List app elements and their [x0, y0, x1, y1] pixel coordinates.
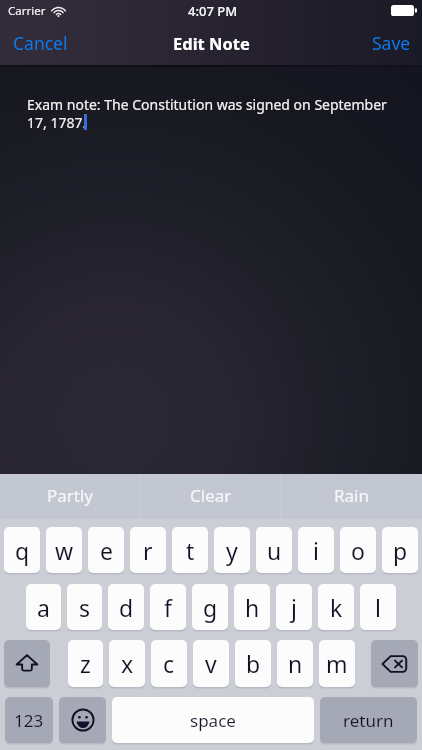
staticText: 123 — [14, 709, 44, 732]
button[interactable]: t — [172, 527, 208, 573]
button[interactable]: n — [277, 640, 313, 687]
button[interactable]: c — [151, 640, 187, 687]
button[interactable]: o — [340, 527, 376, 573]
staticText: x — [121, 648, 134, 679]
staticText: i — [313, 535, 319, 566]
button[interactable]: z — [68, 640, 103, 687]
staticText: Partly — [47, 484, 94, 507]
staticText: p — [393, 535, 408, 566]
button[interactable]: w — [46, 527, 82, 573]
staticText: f — [164, 592, 172, 623]
button[interactable]: Rain — [281, 474, 422, 519]
button[interactable]: l — [360, 584, 396, 630]
staticText: m — [326, 648, 348, 679]
staticText: Edit Note — [173, 32, 250, 54]
button[interactable]: y — [214, 527, 250, 573]
button[interactable]: q — [4, 527, 40, 573]
staticText: s — [79, 592, 91, 623]
button[interactable]: b — [235, 640, 271, 687]
button[interactable]: m — [319, 640, 355, 687]
button[interactable]: f — [150, 584, 186, 630]
button[interactable]: d — [108, 584, 144, 630]
staticText: n — [288, 648, 303, 679]
staticText: Rain — [334, 484, 370, 507]
button[interactable]: i — [298, 527, 334, 573]
staticText: Save — [372, 31, 411, 55]
staticText: h — [245, 592, 260, 623]
staticText: a — [37, 592, 50, 623]
button[interactable]: s — [67, 584, 102, 630]
staticText: Exam note: The Constitution was signed o… — [27, 95, 392, 132]
button[interactable]: j — [276, 584, 312, 630]
staticText: g — [203, 592, 218, 623]
staticText: v — [205, 648, 217, 679]
button[interactable]: p — [382, 527, 418, 573]
staticText: y — [226, 535, 238, 566]
staticText: b — [246, 648, 261, 679]
button[interactable]: k — [318, 584, 354, 630]
button[interactable]: Cancel — [0, 27, 80, 65]
staticText: d — [119, 592, 134, 623]
staticText: u — [267, 535, 282, 566]
staticText: r — [143, 535, 153, 566]
staticText: space — [190, 709, 236, 732]
button[interactable]: r — [130, 527, 166, 573]
staticText: o — [351, 535, 365, 566]
button[interactable]: return — [320, 697, 417, 743]
button[interactable]: Clear — [140, 474, 281, 519]
staticText: Clear — [190, 484, 232, 507]
button[interactable]: v — [193, 640, 229, 687]
button[interactable]: Partly — [0, 474, 140, 519]
staticText: e — [100, 535, 113, 566]
staticText: w — [55, 535, 74, 566]
staticText: Cancel — [13, 31, 68, 55]
staticText: Carrier — [8, 3, 46, 19]
button[interactable]: u — [256, 527, 292, 573]
staticText: z — [80, 648, 91, 679]
button[interactable]: space — [112, 697, 314, 743]
staticText: c — [163, 648, 175, 679]
button[interactable]: h — [234, 584, 270, 630]
button[interactable]: a — [26, 584, 61, 630]
button[interactable]: Emoji keyboard — [59, 697, 106, 743]
button[interactable]: Backspace — [371, 640, 418, 687]
staticText: j — [291, 592, 297, 623]
button[interactable]: Shift — [4, 640, 50, 687]
staticText: l — [375, 592, 381, 623]
button[interactable]: e — [88, 527, 124, 573]
button[interactable]: x — [109, 640, 145, 687]
button[interactable]: g — [192, 584, 228, 630]
staticText: 4:07 PM — [188, 2, 238, 20]
staticText: k — [330, 592, 343, 623]
staticText: return — [343, 709, 394, 732]
button[interactable]: 123 — [5, 697, 53, 743]
button[interactable]: Save — [360, 27, 422, 65]
staticText: q — [15, 535, 30, 566]
staticText: t — [186, 535, 195, 566]
